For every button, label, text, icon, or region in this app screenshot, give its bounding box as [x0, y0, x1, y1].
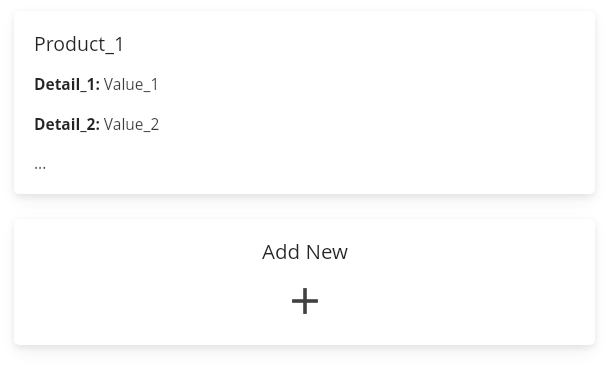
staticText: Product_1 — [34, 30, 126, 57]
staticText: Detail_2: Value_2 — [34, 113, 160, 134]
button[interactable]: Add New — [14, 219, 595, 345]
staticText: ... — [34, 152, 47, 173]
other: Add — [14, 287, 595, 315]
button[interactable]: Product_1 — [14, 11, 595, 194]
staticText: Add New — [262, 237, 348, 265]
staticText: Detail_1: Value_1 — [34, 73, 160, 94]
